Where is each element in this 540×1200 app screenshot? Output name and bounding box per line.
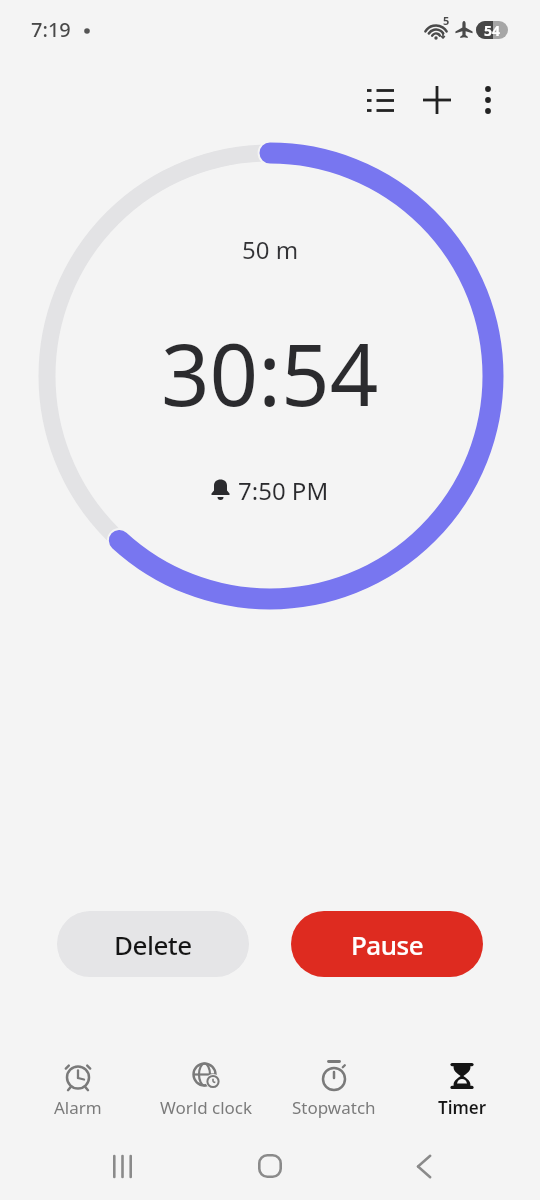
staticText: 54 (484, 21, 501, 39)
staticText: Pause (351, 927, 424, 962)
staticText: 7:50 PM (238, 474, 329, 504)
button[interactable] (246, 1142, 294, 1190)
staticText: 5 (443, 13, 450, 28)
button[interactable]: Pause (291, 911, 483, 977)
button[interactable]: Alarm (14, 1040, 142, 1132)
button[interactable]: Delete (57, 911, 249, 977)
button[interactable] (98, 1142, 146, 1190)
button[interactable] (358, 78, 402, 122)
staticText: 50 m (242, 233, 299, 266)
button[interactable]: Stopwatch (270, 1040, 398, 1132)
button[interactable] (400, 1142, 448, 1190)
button[interactable] (415, 78, 459, 122)
staticText: 30:54 (161, 315, 379, 431)
staticText: Stopwatch (292, 1096, 376, 1119)
staticText: Timer (438, 1096, 487, 1119)
staticText: Alarm (54, 1096, 102, 1119)
button[interactable]: Timer (398, 1040, 526, 1132)
staticText: Delete (114, 927, 192, 962)
button[interactable] (466, 78, 510, 122)
button[interactable]: World clock (142, 1040, 270, 1132)
staticText: World clock (160, 1096, 253, 1119)
staticText: 7:19 (31, 16, 71, 43)
